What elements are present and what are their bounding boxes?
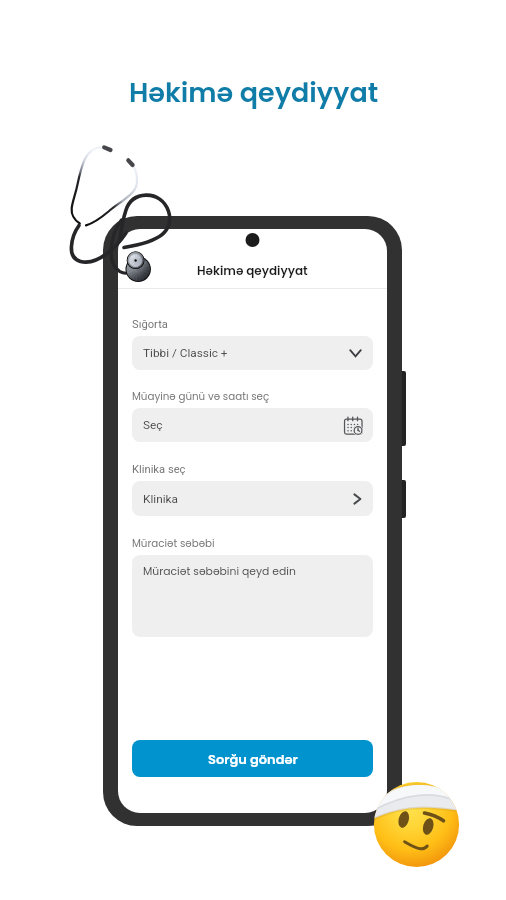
staticText: Sorğu göndər xyxy=(208,750,298,768)
staticText: Sığorta xyxy=(132,318,168,331)
other: Open xyxy=(353,493,362,505)
staticText: Seç xyxy=(143,418,163,432)
staticText: Müayinə günü və saatı seç xyxy=(132,389,270,403)
button[interactable]: Sorğu göndər xyxy=(132,740,373,777)
button[interactable]: Tibbi / Classic + xyxy=(132,336,373,370)
staticText: Klinika xyxy=(143,492,178,506)
other: Expand xyxy=(349,349,362,358)
staticText: Klinika seç xyxy=(132,463,186,476)
staticText: Müraciət səbəbi xyxy=(132,536,215,550)
staticText: Müraciət səbəbini qeyd edin xyxy=(143,564,296,579)
staticText: Tibbi / Classic + xyxy=(143,346,228,360)
staticText: Həkimə qeydiyyat xyxy=(197,262,308,279)
staticText: Həkimə qeydiyyat xyxy=(129,74,379,112)
button[interactable]: Seç xyxy=(132,408,373,442)
button[interactable]: Klinika xyxy=(132,481,373,516)
other: Pick date and time xyxy=(344,416,362,434)
button[interactable]: Müraciət səbəbini qeyd edin xyxy=(132,555,373,637)
